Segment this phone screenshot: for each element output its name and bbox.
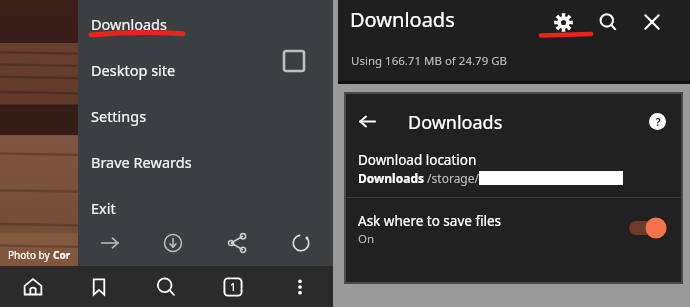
staticText: Brave Rewards [91, 152, 192, 172]
staticText: Settings [91, 106, 147, 126]
button[interactable]: Exit [78, 188, 333, 228]
button[interactable]: Download location [346, 146, 681, 194]
button[interactable]: Forward [78, 220, 141, 266]
staticText: Downloads [350, 6, 455, 33]
button[interactable]: Search [132, 266, 199, 307]
staticText: Cor [53, 248, 71, 262]
staticText: /storage/ [424, 170, 479, 186]
button[interactable]: More options [266, 266, 333, 307]
staticText: Downloads [358, 170, 424, 186]
staticText: ? [655, 114, 661, 129]
staticText: Downloads [91, 14, 167, 34]
button[interactable]: Tabs [199, 266, 266, 307]
button[interactable]: Home [0, 266, 66, 307]
button[interactable]: Help [646, 110, 668, 132]
staticText: Exit [91, 198, 116, 218]
button[interactable]: Back [354, 108, 380, 134]
staticText: Using 166.71 MB of 24.79 GB [351, 53, 508, 69]
button[interactable]: Brave Rewards [78, 142, 333, 182]
staticText: 1 [230, 280, 236, 294]
button[interactable]: Share [205, 220, 269, 266]
button[interactable]: Close [638, 8, 666, 36]
button[interactable]: Downloads [78, 4, 333, 44]
staticText: On [358, 231, 375, 247]
button[interactable]: Bookmarks [66, 266, 132, 307]
button[interactable]: Settings [78, 96, 333, 136]
button[interactable]: Refresh [269, 220, 333, 266]
staticText: Downloads [408, 110, 503, 135]
button[interactable]: Search [594, 8, 622, 36]
button[interactable]: Desktop site checkbox [284, 51, 304, 71]
button[interactable]: Ask where to save files [346, 198, 681, 258]
button[interactable]: Desktop site [78, 50, 333, 90]
staticText: Download location [358, 151, 477, 169]
staticText: Photo by [8, 248, 53, 262]
staticText: Desktop site [91, 60, 176, 80]
button[interactable]: Settings [549, 8, 577, 36]
button[interactable]: Download [141, 220, 205, 266]
staticText: Ask where to save files [358, 212, 502, 230]
button[interactable]: Ask where to save files toggle [627, 216, 671, 240]
